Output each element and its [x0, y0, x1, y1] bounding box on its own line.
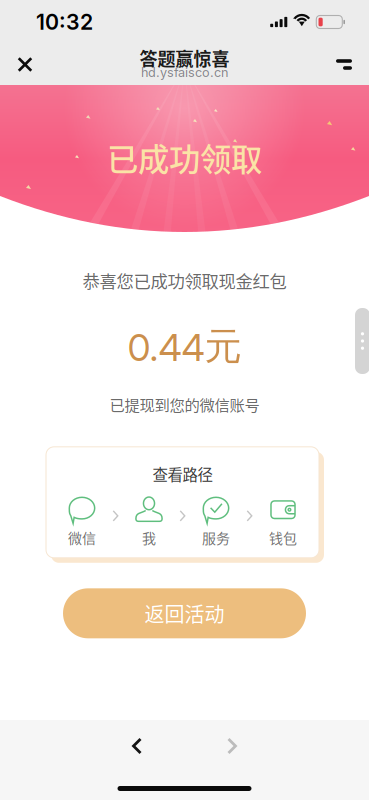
- staticText: 我: [142, 527, 156, 547]
- staticText: 已成功领取: [107, 135, 262, 180]
- button[interactable]: More: [321, 44, 367, 85]
- button[interactable]: 返回活动: [63, 588, 306, 638]
- button[interactable]: Back: [113, 724, 161, 768]
- staticText: 10:32: [36, 9, 93, 35]
- staticText: 已提现到您的微信账号: [109, 393, 259, 415]
- button[interactable]: Forward: [208, 724, 256, 768]
- staticText: hd.ysfaisco.cn: [141, 65, 228, 80]
- staticText: 钱包: [269, 527, 297, 547]
- staticText: 0.44元: [127, 323, 241, 370]
- staticText: 答题赢惊喜: [139, 45, 229, 71]
- staticText: 服务: [202, 527, 230, 547]
- staticText: 查看路径: [152, 463, 212, 485]
- staticText: 恭喜您已成功领取现金红包: [82, 268, 286, 293]
- staticText: 返回活动: [144, 599, 224, 628]
- button[interactable]: Close: [2, 44, 48, 85]
- staticText: 微信: [68, 527, 96, 547]
